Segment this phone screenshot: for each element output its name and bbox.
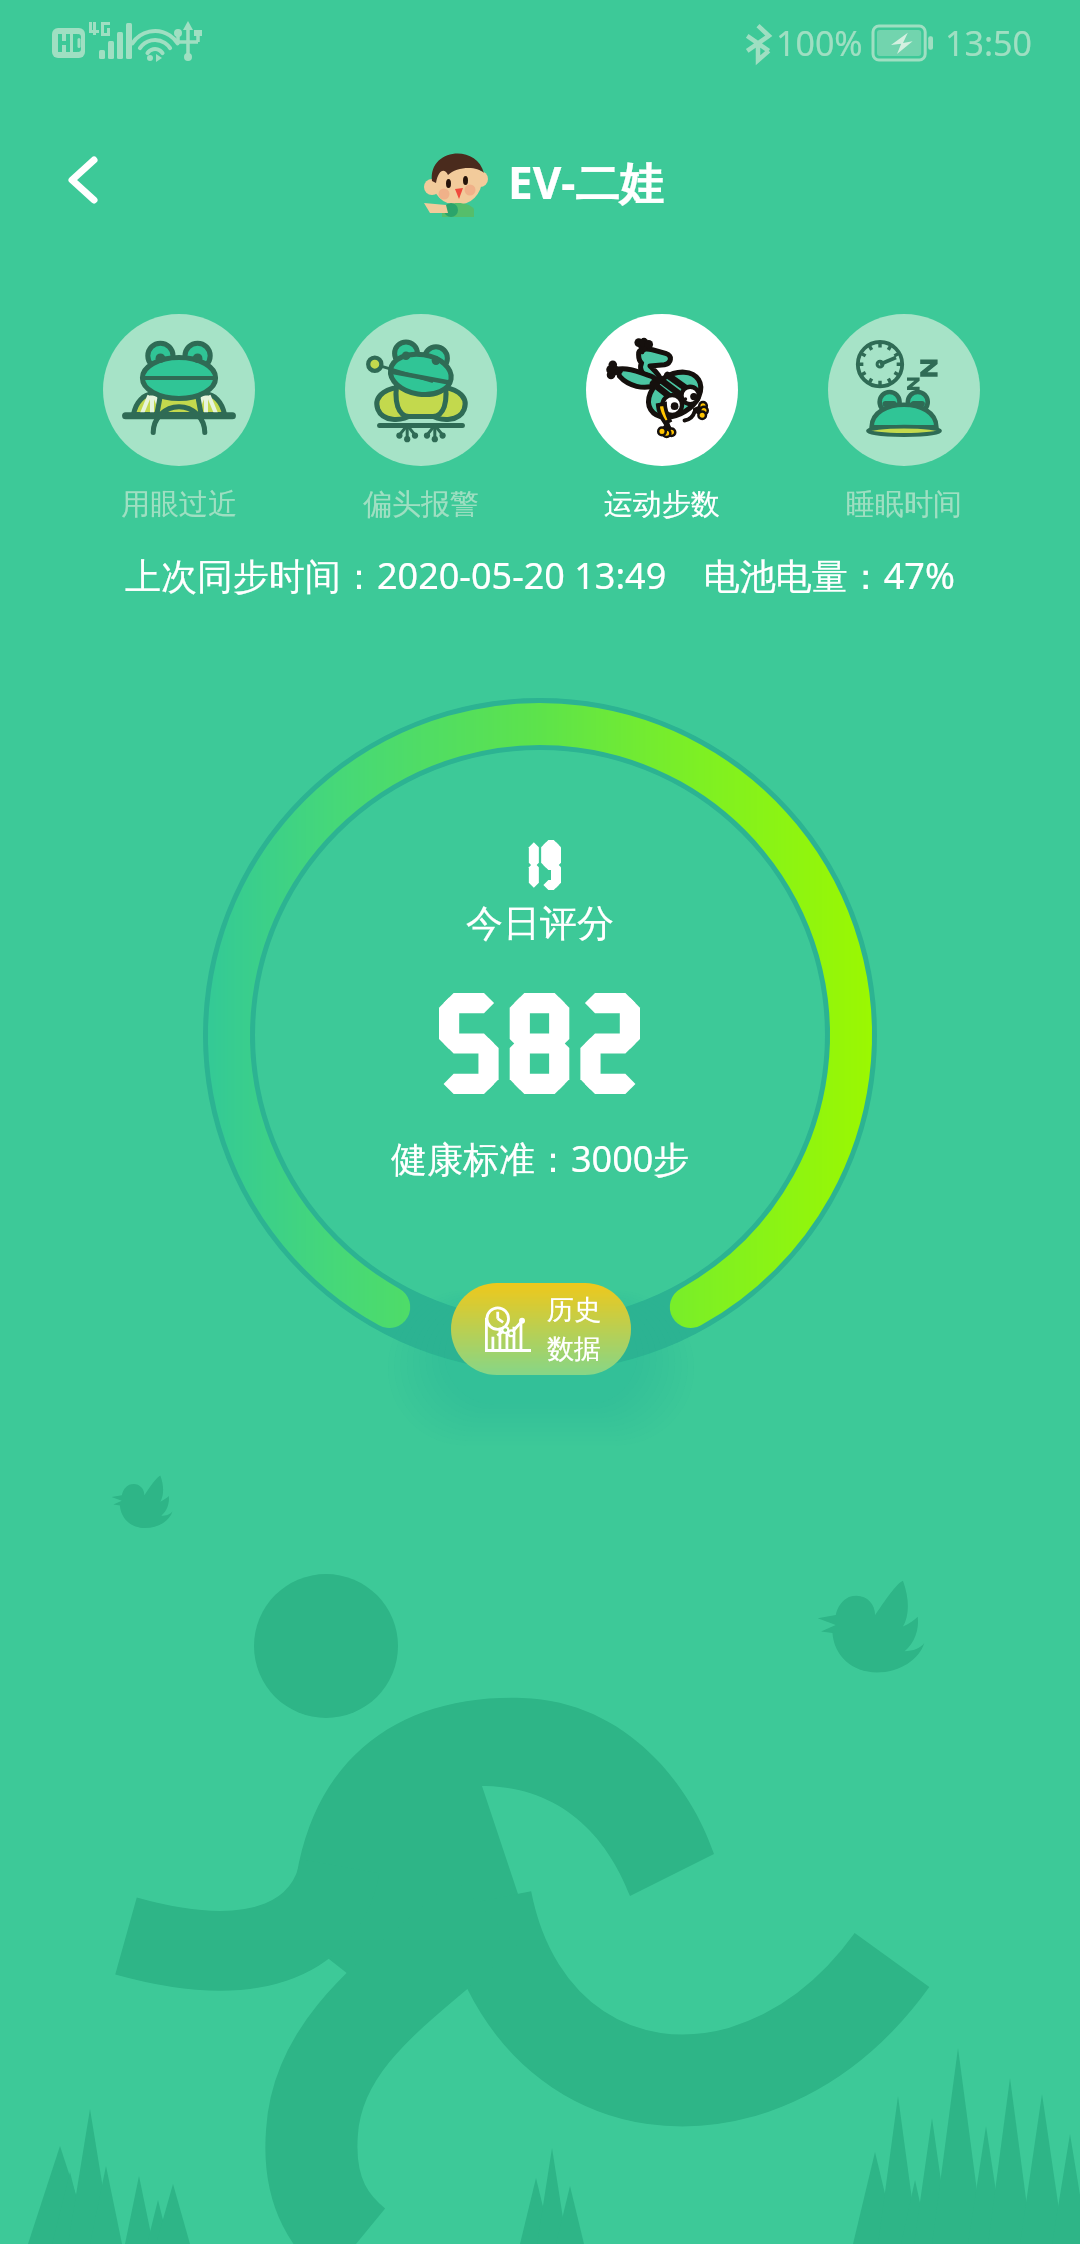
staticText: 数据 <box>547 1332 601 1366</box>
button[interactable]: 睡眠时间 <box>828 314 980 523</box>
staticText: 今日评分 <box>466 900 614 947</box>
staticText: 运动步数 <box>604 486 720 523</box>
staticText: 睡眠时间 <box>846 486 962 523</box>
button[interactable]: 历史 <box>451 1283 631 1375</box>
staticText: 13:50 <box>945 20 1032 66</box>
staticText: 偏头报警 <box>363 486 479 523</box>
staticText: 历史 <box>547 1293 601 1327</box>
staticText: EV-二娃 <box>508 152 664 212</box>
staticText: 健康标准：3000步 <box>391 1134 690 1183</box>
staticText: 100% <box>776 20 863 66</box>
staticText: 上次同步时间：2020-05-20 13:49 电池电量：47% <box>125 551 955 600</box>
button[interactable]: 运动步数 <box>586 314 738 523</box>
button[interactable]: 偏头报警 <box>345 314 497 523</box>
staticText: 用眼过近 <box>121 486 237 523</box>
button[interactable]: 用眼过近 <box>103 314 255 523</box>
button[interactable]: Back <box>46 140 126 220</box>
